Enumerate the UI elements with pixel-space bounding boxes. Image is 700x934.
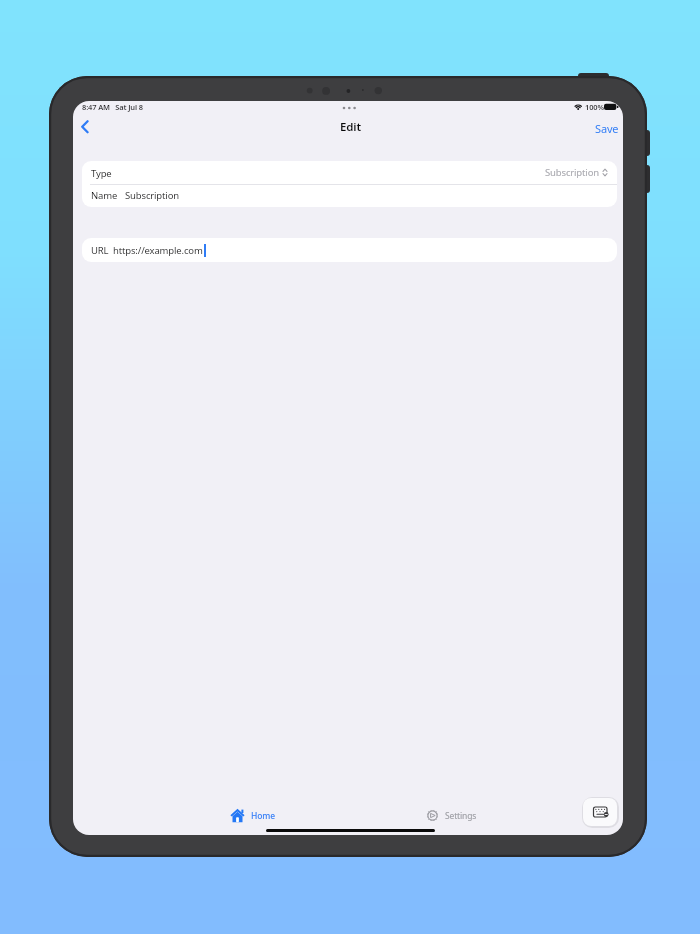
staticText: https://example.com bbox=[113, 244, 203, 257]
staticText: Edit bbox=[340, 119, 361, 135]
button[interactable]: Settings bbox=[426, 803, 477, 827]
button[interactable] bbox=[77, 118, 95, 136]
button[interactable]: Type bbox=[82, 161, 617, 184]
button[interactable]: Home bbox=[230, 803, 275, 827]
staticText: Save bbox=[595, 121, 619, 136]
staticText: Name bbox=[91, 189, 118, 202]
button[interactable]: URL bbox=[82, 238, 617, 262]
staticText: Subscription bbox=[125, 189, 179, 202]
staticText: Type bbox=[91, 167, 112, 180]
button[interactable]: Name bbox=[82, 184, 617, 207]
button[interactable] bbox=[583, 798, 617, 826]
staticText: 8:47 AM Sat Jul 8 bbox=[82, 102, 143, 112]
button[interactable]: Save bbox=[592, 118, 622, 139]
staticText: Home bbox=[251, 810, 275, 822]
staticText: Subscription bbox=[545, 166, 599, 179]
staticText: Settings bbox=[445, 810, 477, 822]
staticText: URL bbox=[91, 244, 109, 257]
staticText: 100% bbox=[585, 102, 604, 112]
